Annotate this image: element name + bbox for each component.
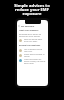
staticText: Reduce the radiations bbox=[19, 44, 41, 47]
button[interactable]: Back bbox=[18, 24, 47, 28]
button[interactable]: Use a headset during your calls. bbox=[19, 48, 46, 52]
button[interactable]: Avoid calls when the signal is weak, the… bbox=[19, 58, 46, 64]
staticText: Radiofrequency waves are emitted by many… bbox=[19, 33, 46, 37]
button[interactable]: Prefer texting instead of calling. bbox=[19, 53, 46, 57]
staticText: My exposure bbox=[21, 25, 35, 28]
staticText: Simple advices to reduce your EMF exposu… bbox=[14, 3, 50, 16]
staticText: Keep the phone away from your body. bbox=[24, 38, 46, 42]
staticText: Use a headset during your calls. bbox=[24, 48, 46, 52]
staticText: Prefer texting instead of calling. bbox=[24, 53, 46, 57]
button[interactable]: Keep the phone away from your body. bbox=[19, 38, 46, 42]
staticText: Limit your exposure bbox=[19, 29, 39, 32]
staticText: Avoid calls when the signal is weak, the… bbox=[24, 58, 46, 64]
